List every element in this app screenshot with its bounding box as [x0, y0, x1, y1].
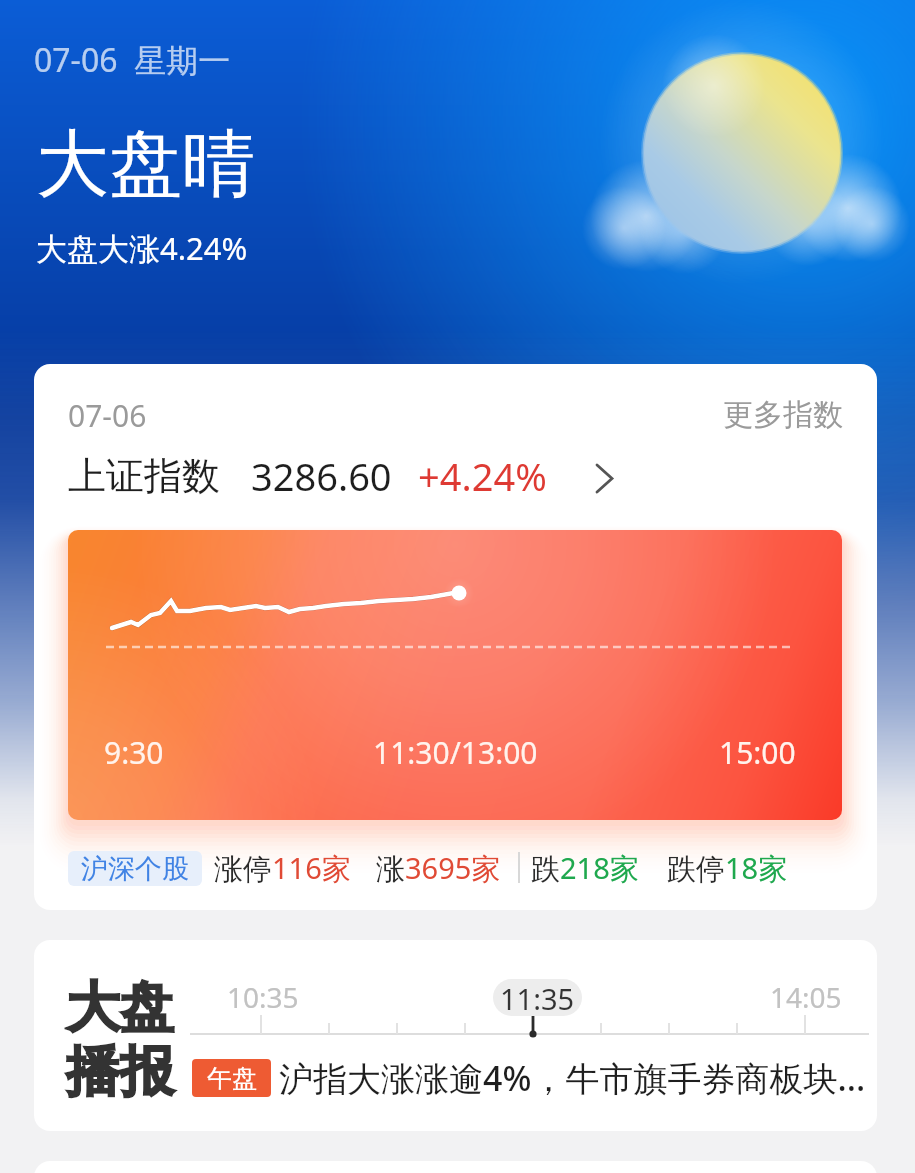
staticText: 15:00	[719, 732, 796, 773]
staticText: 大盘 播报	[66, 974, 174, 1106]
button[interactable]: 跌218家	[531, 828, 639, 908]
staticText: 10:35	[227, 978, 299, 1016]
staticText: 午盘	[207, 1063, 257, 1094]
staticText: 跌218家	[531, 848, 639, 888]
staticText: 涨3695家	[376, 848, 501, 888]
staticText: 14:05	[770, 978, 842, 1016]
button[interactable]: 沪深个股	[68, 851, 202, 886]
staticText: 大盘晴	[36, 119, 255, 199]
button[interactable]: 9:30	[68, 530, 842, 820]
staticText: 跌停18家	[667, 848, 788, 888]
button[interactable]: 跌停18家	[667, 828, 788, 908]
staticText: 更多指数	[723, 396, 843, 434]
staticText: 沪指大涨涨逾4%，牛市旗手券商板块...	[279, 1055, 866, 1101]
staticText: 07-06	[68, 395, 147, 436]
button[interactable]: 更多	[580, 450, 632, 502]
button[interactable]: 涨停116家	[214, 828, 351, 908]
staticText: 上证指数	[68, 452, 220, 500]
staticText: 沪深个股	[81, 852, 189, 886]
staticText: 11:35	[500, 979, 575, 1016]
staticText: 3286.60	[251, 450, 392, 502]
staticText: 11:30/13:00	[373, 732, 538, 773]
staticText: 07-06 星期一	[34, 38, 231, 82]
staticText: +4.24%	[418, 450, 547, 502]
button[interactable]: 涨3695家	[376, 828, 501, 908]
staticText: 9:30	[104, 732, 164, 773]
staticText: 涨停116家	[214, 848, 351, 888]
staticText: 大盘大涨4.24%	[36, 227, 248, 269]
button[interactable]	[34, 364, 877, 910]
button[interactable]: 沪指大涨涨逾4%，牛市旗手券商板块...	[279, 1050, 877, 1106]
button[interactable]: 更多指数	[600, 390, 843, 440]
button[interactable]	[34, 940, 877, 1131]
